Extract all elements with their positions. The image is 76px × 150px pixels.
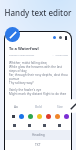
button[interactable]: Format 1 [26, 122, 33, 129]
staticText: Bold [35, 105, 42, 109]
button[interactable]: Format 2 [41, 122, 48, 129]
button[interactable]: Format 3 [56, 122, 63, 129]
button[interactable]: Edit [66, 99, 76, 113]
staticText: To a Waterfowl [9, 46, 39, 51]
button[interactable]: Colour 1 [28, 114, 33, 119]
staticText: Might mark thy distant flight to do thee [9, 92, 67, 96]
button[interactable]: Colour 4 [55, 114, 60, 119]
staticText: steps of day, [9, 69, 28, 73]
button[interactable]: Aa [5, 102, 27, 112]
button[interactable]: TXT [5, 140, 71, 150]
button[interactable]: Compose [5, 27, 20, 42]
staticText: Handy text editor [0, 7, 76, 18]
staticText: pursue [9, 77, 20, 81]
staticText: · · 4 min read [52, 53, 68, 56]
staticText: William Cullen Bryant [9, 53, 35, 56]
staticText: Aa [14, 105, 18, 109]
button[interactable]: Colour 0 [19, 114, 24, 119]
staticText: Far, through their rosy depths, dost tho… [9, 73, 68, 77]
button[interactable]: Bold [27, 102, 49, 112]
staticText: TXT [35, 143, 41, 147]
button[interactable]: Heading [5, 130, 71, 140]
staticText: Whither, midst falling dew, [9, 61, 48, 65]
staticText: Heading [32, 133, 45, 137]
staticText: Size [57, 105, 63, 109]
button[interactable]: Colour 3 [46, 114, 51, 119]
staticText: Vainly the fowler's eye [9, 88, 42, 92]
staticText: Thy solitary way? [9, 81, 34, 85]
staticText: While glow the heavens with the last [9, 65, 62, 69]
button[interactable]: Format 0 [11, 122, 18, 129]
button[interactable]: Colour 2 [37, 114, 42, 119]
button[interactable]: Colour 5 [64, 114, 69, 119]
button[interactable]: Size [49, 102, 71, 112]
